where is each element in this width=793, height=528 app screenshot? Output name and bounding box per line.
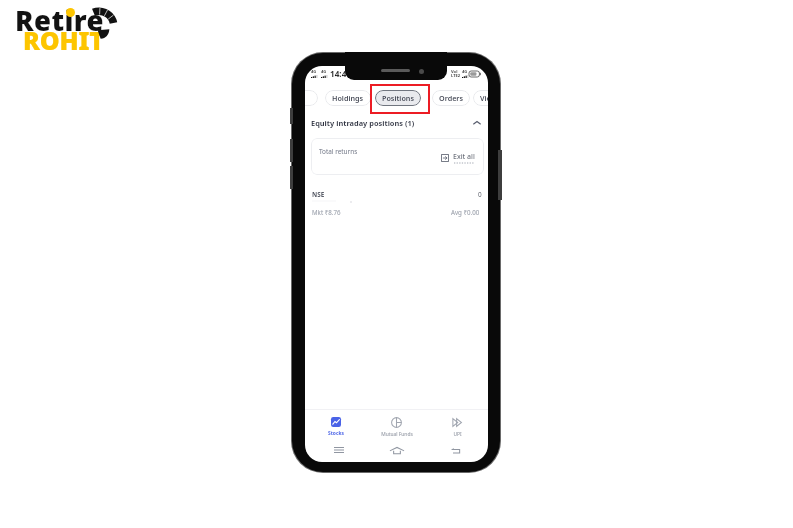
staticText: View all — [480, 93, 488, 103]
staticText: Positions — [382, 93, 414, 103]
staticText: Stocks — [328, 430, 344, 437]
staticText: Total returns — [319, 147, 358, 156]
button[interactable]: Recent apps — [325, 440, 353, 460]
button[interactable]: Stocks — [305, 410, 366, 439]
button[interactable]: Back — [441, 440, 469, 460]
staticText: 4G — [321, 69, 327, 75]
button[interactable]: NSE — [305, 186, 488, 222]
button[interactable]: View all — [473, 90, 488, 106]
button[interactable]: Positions — [375, 90, 421, 106]
button[interactable]: Home — [383, 440, 411, 460]
staticText: UPI — [453, 431, 462, 438]
staticText: ROHIT — [23, 23, 104, 57]
button[interactable]: Mutual Funds — [366, 410, 427, 439]
button[interactable]: Equity intraday positions (1) — [305, 114, 488, 132]
staticText: Avg ₹0.00 — [451, 208, 480, 216]
staticText: Mutual Funds — [381, 431, 413, 438]
button[interactable] — [305, 90, 318, 106]
other: Exit all — [441, 154, 449, 162]
staticText: 4G — [462, 69, 468, 75]
staticText: 0 — [478, 190, 482, 199]
staticText: Vol LTE2 — [451, 69, 461, 79]
staticText: Orders — [439, 93, 463, 103]
staticText: 4G — [311, 69, 317, 75]
staticText: Mkt ₹8.76 — [312, 208, 341, 216]
staticText: Equity intraday positions (1) — [311, 118, 415, 128]
staticText: NSE — [312, 190, 325, 199]
button[interactable]: Total returns — [311, 138, 484, 175]
button[interactable]: UPI — [427, 410, 488, 439]
button[interactable]: Orders — [432, 90, 470, 106]
other: Collapse section — [473, 119, 481, 127]
staticText: Exit all — [453, 152, 475, 162]
staticText: 14:46 — [330, 68, 352, 79]
button[interactable]: Holdings — [325, 90, 371, 106]
staticText: Retire — [15, 2, 104, 39]
staticText: Holdings — [332, 93, 364, 103]
button[interactable]: Exit all — [441, 152, 475, 164]
